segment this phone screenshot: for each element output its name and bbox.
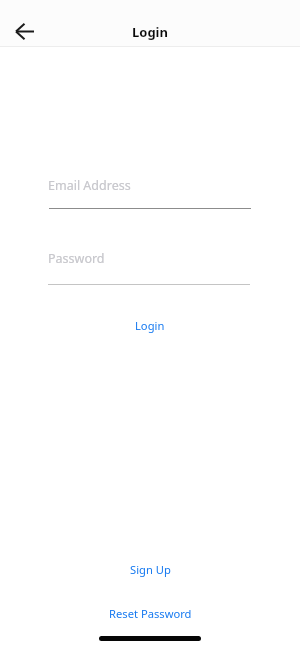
- button[interactable]: [8, 15, 42, 47]
- button[interactable]: Reset Password: [97, 600, 204, 627]
- button[interactable]: Sign Up: [118, 556, 183, 583]
- staticText: Login: [135, 318, 165, 333]
- button[interactable]: Email Address: [48, 170, 252, 210]
- button[interactable]: Password: [48, 245, 252, 285]
- staticText: Login: [132, 23, 168, 41]
- staticText: Password: [48, 250, 105, 267]
- staticText: Reset Password: [109, 606, 192, 621]
- staticText: Sign Up: [130, 562, 171, 577]
- button[interactable]: Login: [123, 312, 177, 339]
- staticText: Email Address: [48, 177, 131, 194]
